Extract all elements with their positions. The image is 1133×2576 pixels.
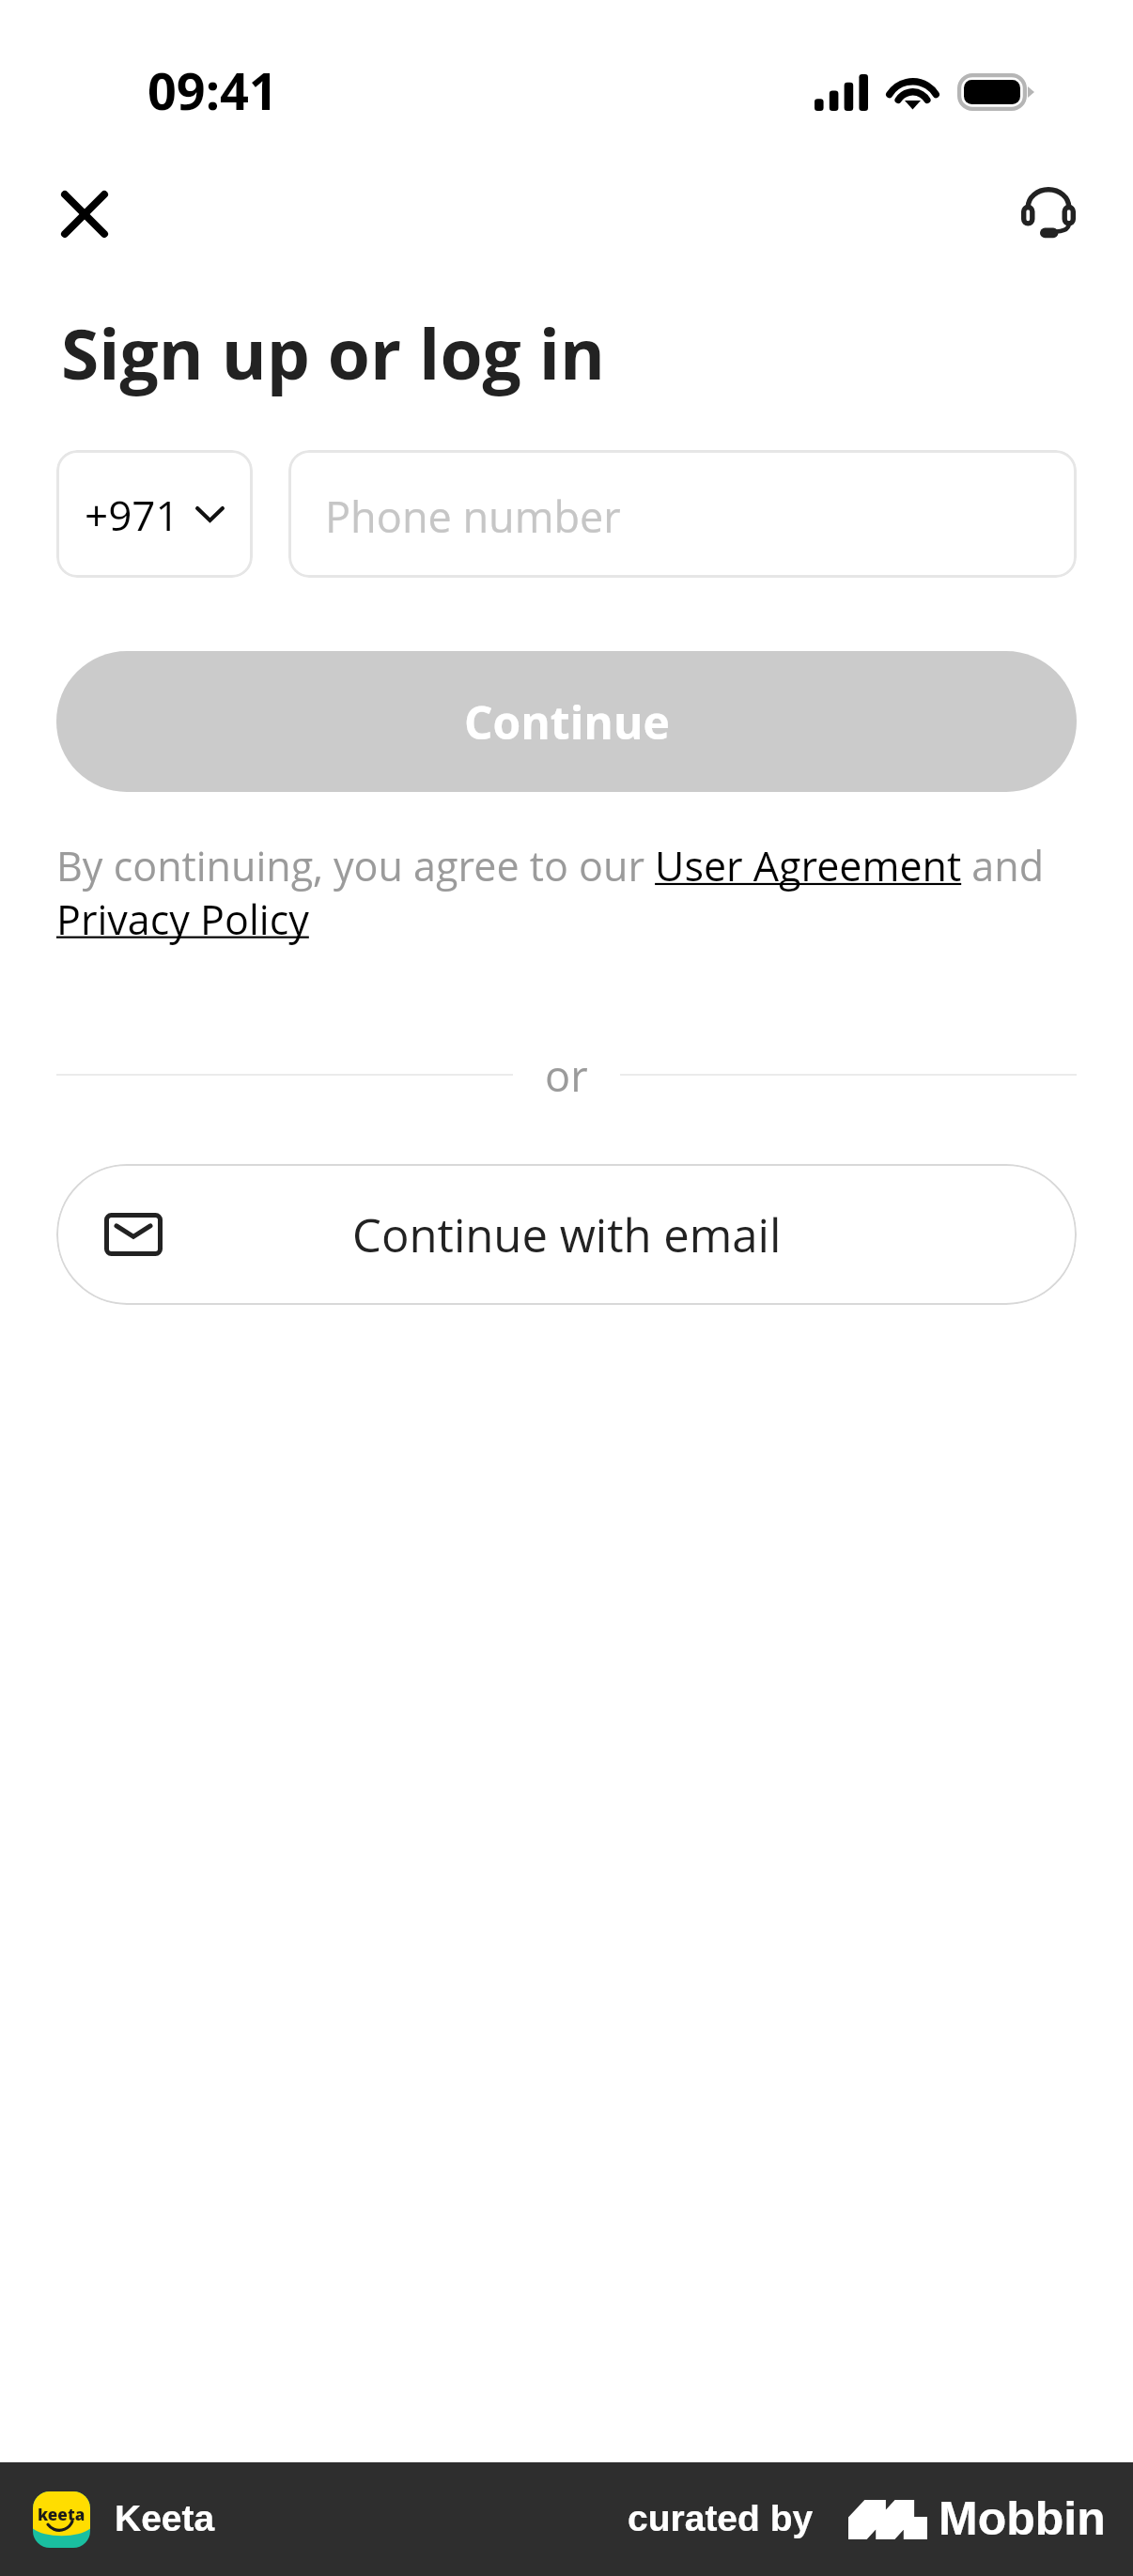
button[interactable]: Privacy Policy (56, 892, 307, 938)
button[interactable]: Continue with email (56, 1164, 1077, 1305)
staticText: curated by (628, 2498, 814, 2539)
button[interactable]: Close (42, 172, 127, 256)
staticText: +971 (85, 487, 179, 543)
staticText: Phone number (325, 488, 621, 545)
staticText: Sign up or log in (61, 306, 606, 399)
staticText: or (545, 1047, 588, 1103)
staticText: Continue (464, 691, 670, 753)
button[interactable]: User Agreement (653, 841, 947, 886)
staticText: Mobbin (939, 2492, 1106, 2545)
button[interactable]: Customer support (1005, 168, 1092, 255)
staticText: keeta (38, 2504, 85, 2525)
button[interactable]: Phone number (288, 450, 1077, 578)
staticText: 09:41 (147, 55, 278, 125)
staticText: By continuing, you agree to our User Agr… (56, 838, 1077, 946)
staticText: Continue with email (352, 1203, 782, 1266)
staticText: Keeta (115, 2498, 215, 2539)
button[interactable]: Continue (56, 651, 1077, 792)
button[interactable]: +971 (56, 450, 253, 578)
